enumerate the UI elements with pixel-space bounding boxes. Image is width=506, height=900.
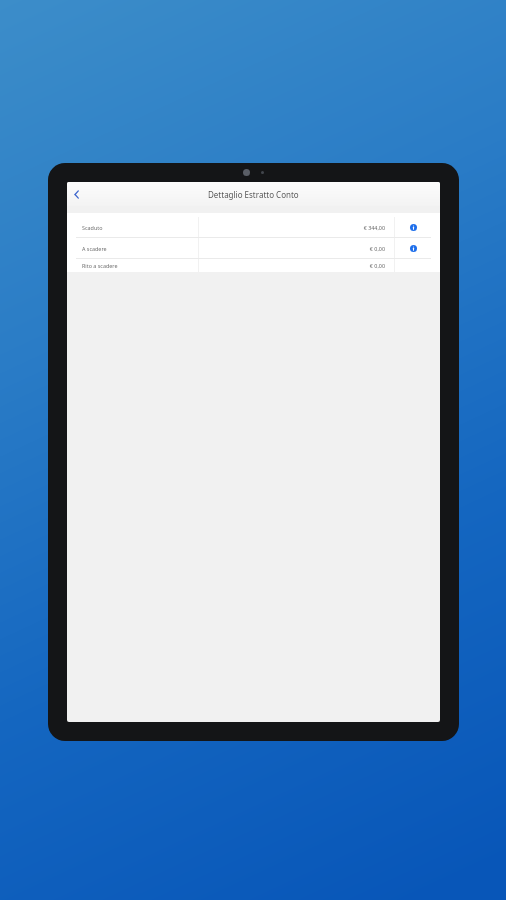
button[interactable]: Info A scadere [407, 242, 420, 255]
button[interactable]: Back [68, 186, 84, 202]
staticText: € 0,00 [369, 262, 385, 269]
staticText: A scadere [82, 245, 107, 252]
staticText: Scaduto [82, 224, 103, 231]
staticText: Dettaglio Estratto Conto [208, 189, 299, 200]
button[interactable]: Info Scaduto [407, 221, 420, 234]
button[interactable]: A scadere [76, 237, 431, 258]
button[interactable]: Rito a scadere [76, 258, 431, 272]
button[interactable]: Scaduto [76, 217, 431, 237]
staticText: Rito a scadere [82, 262, 118, 269]
staticText: € 344,00 [363, 224, 385, 231]
staticText: € 0,00 [369, 245, 385, 252]
